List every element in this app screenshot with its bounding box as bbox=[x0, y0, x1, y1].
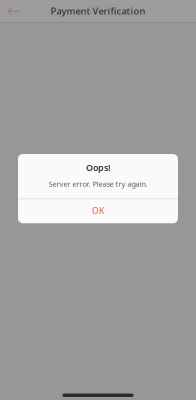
staticText: Server error. Please try again. bbox=[48, 179, 147, 189]
button[interactable]: Back bbox=[0, 1, 27, 21]
staticText: Oops! bbox=[86, 161, 110, 173]
button[interactable]: OK bbox=[18, 199, 178, 223]
staticText: OK bbox=[92, 205, 104, 217]
staticText: Payment Verification bbox=[50, 5, 145, 17]
